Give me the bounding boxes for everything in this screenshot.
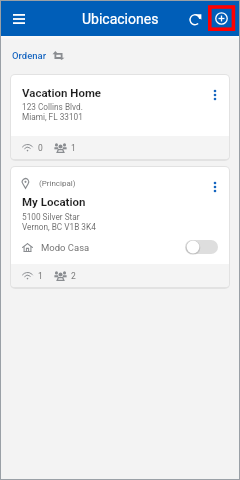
button[interactable]: Ordenar — [8, 44, 69, 66]
staticText: 1 — [38, 271, 43, 281]
button[interactable]: More options — [203, 83, 227, 107]
staticText: My Location — [22, 195, 86, 208]
button[interactable]: More options — [203, 175, 227, 199]
button[interactable]: Vacation Home — [11, 75, 229, 159]
staticText: 0 — [38, 143, 43, 153]
staticText: Modo Casa — [41, 242, 90, 253]
button[interactable]: Menu — [5, 5, 33, 33]
staticText: 123 Collins Blvd. Miami, FL 33101 — [22, 102, 83, 122]
staticText: (Principal) — [39, 179, 76, 188]
staticText: 1 — [71, 143, 76, 153]
staticText: Ordenar — [12, 50, 47, 61]
staticText: Vacation Home — [22, 86, 102, 99]
button[interactable]: Refresh — [181, 5, 209, 33]
staticText: Ubicaciones — [82, 11, 159, 27]
button[interactable]: Modo Casa — [22, 237, 218, 257]
button[interactable]: (Principal) — [11, 167, 229, 287]
staticText: 5100 Silver Star Vernon, BC V1B 3K4 — [22, 212, 96, 232]
staticText: 2 — [71, 271, 76, 281]
button[interactable]: Add location — [207, 4, 235, 32]
